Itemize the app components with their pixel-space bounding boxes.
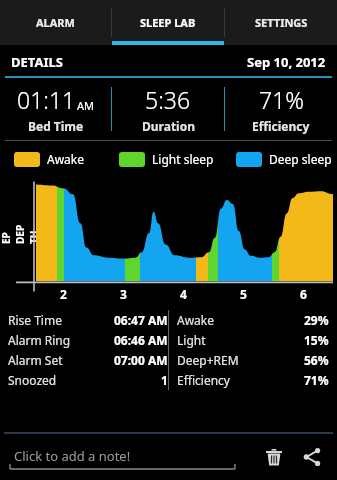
staticText: Snoozed [8, 372, 57, 388]
staticText: Awake [47, 151, 85, 167]
button[interactable]: 5:36 [112, 78, 224, 140]
staticText: 1 [161, 372, 168, 388]
staticText: Light sleep [152, 151, 214, 167]
staticText: ALARM [36, 15, 75, 30]
button[interactable] [0, 177, 337, 302]
staticText: 01:11 [17, 84, 76, 115]
staticText: Sep 10, 2012 [247, 53, 326, 71]
staticText: Deep+REM [177, 352, 239, 368]
button[interactable]: Deep sleep [236, 151, 332, 167]
staticText: Rise Time [8, 312, 62, 328]
button[interactable]: Light [177, 332, 329, 348]
button[interactable]: 71% [225, 78, 337, 140]
button[interactable]: Rise Time [8, 312, 168, 328]
staticText: DETAILS [11, 53, 63, 71]
staticText: 06:46 AM [114, 332, 168, 348]
button[interactable]: Delete [257, 440, 291, 474]
button[interactable]: 01:11 [0, 78, 111, 140]
button[interactable]: SETTINGS [225, 0, 337, 45]
button[interactable]: Share [295, 440, 329, 474]
staticText: 2 [60, 286, 67, 302]
staticText: 07:00 AM [114, 352, 168, 368]
staticText: Alarm Set [8, 352, 63, 368]
staticText: 5:36 [145, 84, 191, 115]
staticText: Efficiency [252, 118, 310, 134]
staticText: SLEEP LAB [140, 15, 196, 30]
staticText: Efficiency [177, 372, 230, 388]
staticText: 71% [259, 84, 304, 115]
staticText: Duration [142, 118, 195, 134]
staticText: Bed Time [28, 118, 84, 134]
staticText: SETTINGS [255, 15, 308, 30]
staticText: Light [177, 332, 206, 348]
staticText: Deep sleep [269, 151, 332, 167]
staticText: SLEEP DEPTH [0, 222, 41, 244]
staticText: Click to add a note! [14, 447, 131, 465]
button[interactable]: Alarm Set [8, 352, 168, 368]
button[interactable]: Awake [177, 312, 329, 328]
staticText: 71% [304, 372, 329, 388]
button[interactable]: ALARM [0, 0, 111, 45]
button[interactable]: Efficiency [177, 372, 329, 388]
button[interactable]: Light sleep [119, 151, 214, 167]
button[interactable]: Snoozed [8, 372, 168, 388]
staticText: 06:47 AM [114, 312, 168, 328]
staticText: 6 [300, 286, 307, 302]
staticText: 5 [240, 286, 247, 302]
staticText: 15% [304, 332, 329, 348]
staticText: 29% [304, 312, 329, 328]
staticText: 4 [180, 286, 187, 302]
staticText: 56% [304, 352, 329, 368]
staticText: AM [77, 98, 95, 113]
button[interactable]: Alarm Ring [8, 332, 168, 348]
button[interactable]: SLEEP LAB [112, 0, 224, 45]
button[interactable]: Click to add a note! [8, 440, 247, 474]
button[interactable]: Deep+REM [177, 352, 329, 368]
button[interactable]: Awake [14, 151, 85, 167]
staticText: Alarm Ring [8, 332, 71, 348]
staticText: 3 [120, 286, 127, 302]
staticText: Awake [177, 312, 215, 328]
